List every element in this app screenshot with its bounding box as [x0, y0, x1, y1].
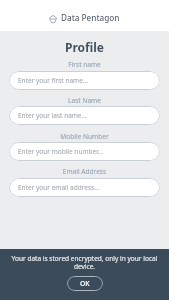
- staticText: Enter your mobile number...: [18, 147, 104, 156]
- staticText: Profile: [0, 39, 169, 55]
- other: Data Pentagon logo: [49, 15, 57, 23]
- staticText: OK: [80, 279, 90, 288]
- button[interactable]: Enter your last name...: [9, 106, 160, 125]
- staticText: Data Pentagon: [61, 12, 120, 23]
- button[interactable]: Enter your email address...: [9, 178, 160, 197]
- staticText: Mobile Number: [0, 132, 169, 141]
- staticText: Your data is stored encrypted, only in y…: [0, 254, 169, 271]
- staticText: Enter your first name...: [18, 76, 89, 85]
- button[interactable]: Enter your mobile number...: [9, 142, 160, 161]
- button[interactable]: OK: [67, 276, 103, 291]
- button[interactable]: Enter your first name...: [9, 71, 160, 90]
- staticText: Enter your email address...: [18, 183, 100, 192]
- staticText: Email Address: [0, 167, 169, 176]
- staticText: First name: [0, 60, 169, 69]
- staticText: Enter your last name...: [18, 111, 87, 120]
- staticText: Last Name: [0, 96, 169, 105]
